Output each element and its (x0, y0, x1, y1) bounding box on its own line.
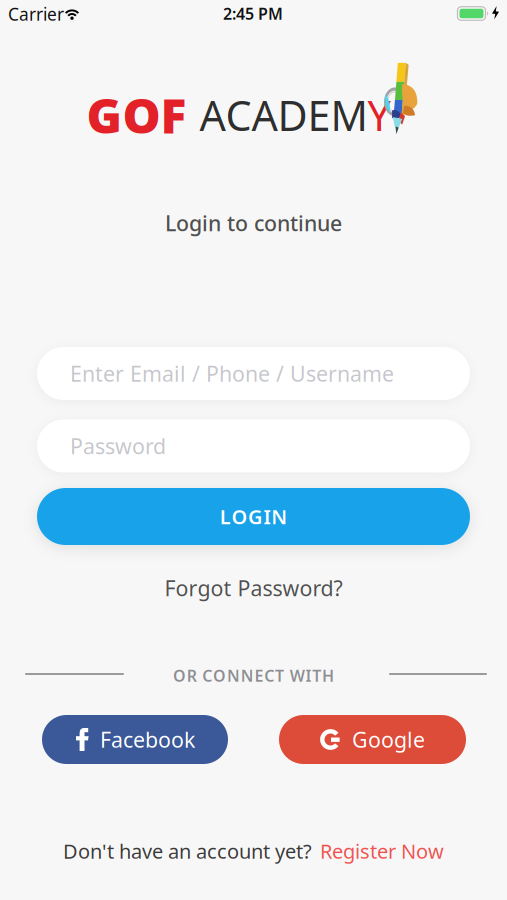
staticText: Register Now (320, 838, 444, 864)
staticText: Y (367, 88, 390, 142)
button[interactable]: Register Now (320, 838, 444, 864)
button[interactable]: Forgot Password? (164, 574, 342, 602)
staticText: GOF (86, 83, 186, 147)
staticText: ACADEM (199, 88, 367, 142)
button[interactable]: Enter Email / Phone / Username (37, 347, 470, 400)
button[interactable]: Password (37, 419, 470, 472)
staticText: Forgot Password? (164, 574, 342, 602)
staticText: Enter Email / Phone / Username (70, 359, 394, 388)
staticText: Login to continue (165, 209, 342, 237)
staticText: OR CONNECT WITH (173, 665, 334, 686)
staticText: Facebook (100, 725, 195, 754)
staticText: 2:45 PM (223, 3, 283, 24)
button[interactable]: Google (279, 715, 466, 764)
staticText: Don't have an account yet? (63, 838, 312, 864)
staticText: Carrier (8, 2, 64, 25)
button[interactable]: LOGIN (37, 488, 470, 545)
button[interactable]: Facebook (42, 715, 228, 764)
staticText: Password (70, 432, 166, 460)
staticText: LOGIN (220, 503, 287, 530)
staticText: Google (352, 725, 425, 754)
